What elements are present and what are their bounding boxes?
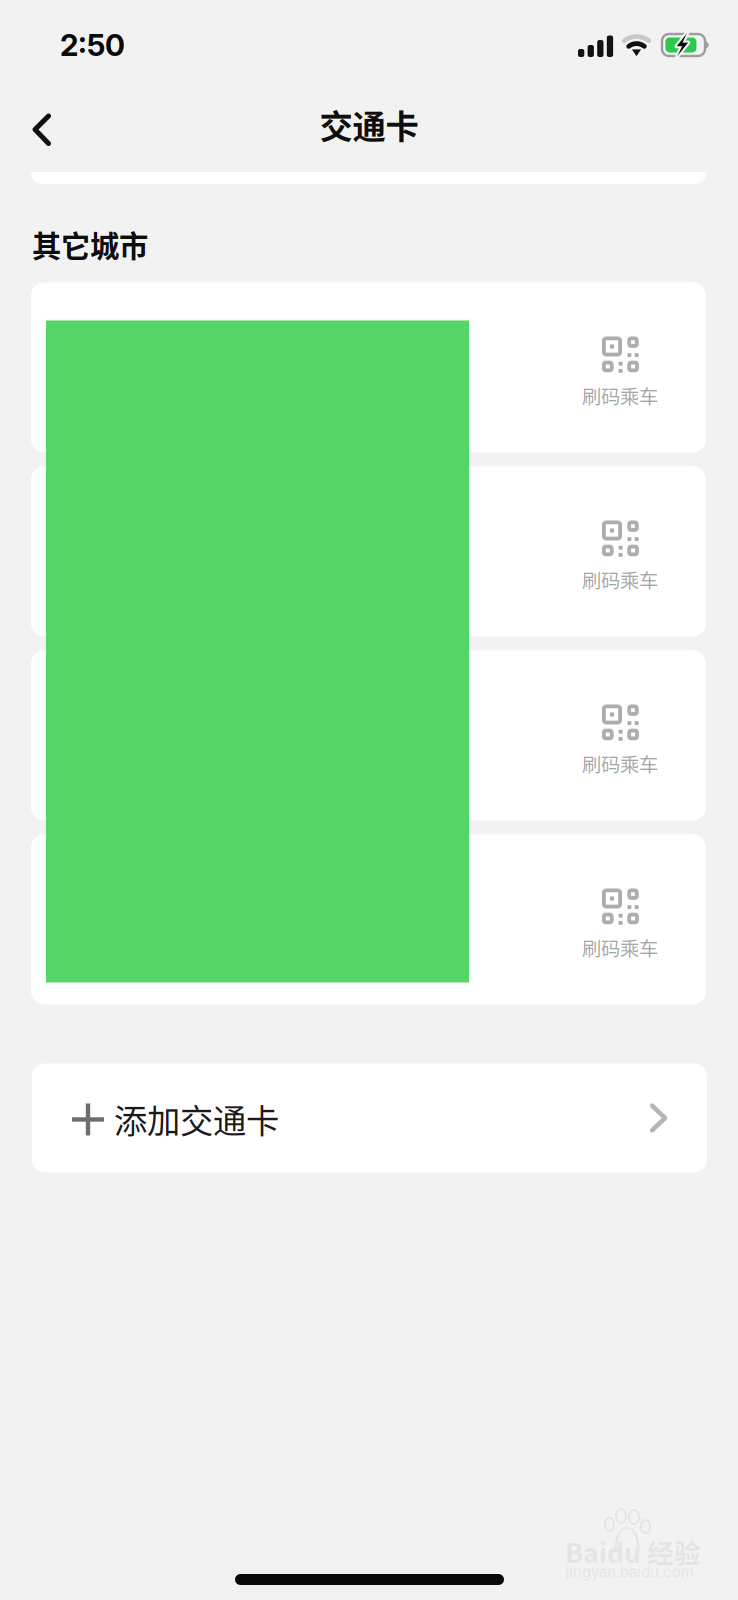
button[interactable]: 刷码乘车 — [31, 834, 706, 1004]
staticText: 刷码乘车 — [582, 749, 658, 777]
staticText: 刷码乘车 — [582, 565, 658, 593]
staticText: 2:50 — [60, 27, 125, 63]
button[interactable]: 刷码乘车 — [31, 650, 706, 820]
staticText: 刷码乘车 — [582, 933, 658, 961]
button[interactable]: Back — [7, 95, 77, 165]
staticText: 其它城市 — [32, 223, 148, 265]
button[interactable]: 添加交通卡 — [32, 1063, 707, 1172]
staticText: 交通卡 — [319, 100, 418, 148]
button[interactable]: 刷码乘车 — [31, 466, 706, 636]
staticText: jingyan.baidu.com — [565, 1563, 694, 1581]
staticText: 添加交通卡 — [114, 1094, 279, 1143]
button[interactable]: 刷码乘车 — [31, 282, 706, 452]
staticText: 刷码乘车 — [582, 381, 658, 409]
staticText: Baidu 经验 — [565, 1532, 701, 1571]
